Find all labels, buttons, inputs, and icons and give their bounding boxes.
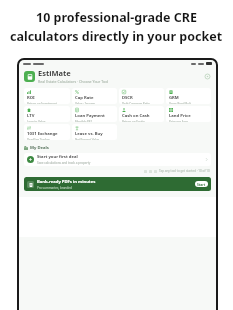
staticText: Monthly P&I (75, 120, 92, 122)
staticText: EstiMate (38, 68, 71, 78)
staticText: Cash on Cash (122, 113, 150, 119)
staticText: Save calculations and track a property (37, 161, 91, 165)
staticText: My Deals (30, 145, 49, 151)
staticText: calculators directly in your pocket (10, 28, 223, 45)
button[interactable]: Cap Rate (72, 88, 117, 104)
staticText: Bank-ready PDFs in minutes (37, 179, 96, 185)
staticText: Real Estate Calculators · Choose Your To… (38, 79, 109, 84)
staticText: Return on Equity (122, 120, 145, 122)
button[interactable]: Loan Payment (72, 106, 117, 122)
staticText: Price per Acre (169, 120, 188, 122)
button[interactable]: LTV (24, 106, 70, 122)
staticText: GRM (169, 95, 179, 101)
button[interactable]: Lease vs. Buy (72, 124, 117, 140)
staticText: Deadline Tracker (27, 138, 50, 140)
button[interactable]: Bank-ready PDFs in minutes (24, 177, 211, 191)
button[interactable]: Settings (204, 73, 211, 80)
button[interactable]: Cash on Cash (119, 106, 164, 122)
staticText: Gross Rent Mult. (169, 102, 192, 104)
staticText: Loan Payment (75, 113, 105, 119)
staticText: Debt Coverage Ratio (122, 102, 150, 104)
staticText: Start your first deal (37, 154, 78, 160)
staticText: DSCR (122, 95, 133, 101)
button[interactable]: Land Price (166, 106, 211, 122)
button[interactable]: Start (195, 181, 208, 187)
button[interactable]: ROI (24, 88, 70, 104)
staticText: Tap any tool to get started · 10 of 10 (159, 169, 210, 173)
staticText: Loan to Value (27, 120, 46, 122)
staticText: Land Price (169, 113, 191, 119)
button[interactable]: GRM (166, 88, 211, 104)
button[interactable]: 1031 Exchange (24, 124, 70, 140)
button[interactable]: DSCR (119, 88, 164, 104)
staticText: Return on Investment (27, 102, 57, 104)
staticText: Pro summaries, branded (37, 186, 72, 190)
staticText: Cap Rate (75, 95, 94, 101)
button[interactable]: Start your first deal (24, 153, 211, 166)
staticText: Net Present Value (75, 138, 100, 140)
staticText: Lease vs. Buy (75, 131, 103, 137)
staticText: 10 professional-grade CRE (36, 9, 197, 26)
staticText: Value · Income (75, 102, 95, 104)
staticText: ROI (27, 95, 35, 101)
staticText: Start (197, 182, 206, 186)
staticText: 1031 Exchange (27, 131, 58, 137)
staticText: LTV (27, 113, 35, 119)
